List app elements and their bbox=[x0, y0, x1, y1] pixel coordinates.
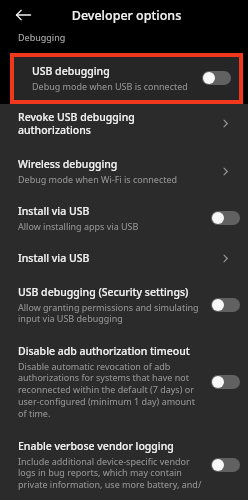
button[interactable]: Disable adb authorization timeout bbox=[211, 375, 240, 389]
button[interactable]: Revoke USB debugging authorizations bbox=[0, 104, 248, 149]
button[interactable]: Enable verbose vendor logging bbox=[0, 430, 248, 500]
staticText: Install via USB bbox=[18, 204, 90, 218]
staticText: Debug mode when USB is connected bbox=[32, 80, 188, 92]
button[interactable]: USB debugging bbox=[14, 57, 239, 99]
staticText: Debug mode when Wi-Fi is connected bbox=[18, 173, 178, 185]
button[interactable]: USB debugging (Security settings) bbox=[211, 298, 240, 312]
staticText: USB debugging bbox=[32, 64, 110, 78]
staticText: USB debugging (Security settings) bbox=[18, 285, 189, 299]
button[interactable]: Wireless debugging bbox=[0, 149, 248, 195]
staticText: Allow installing apps via USB bbox=[18, 220, 139, 232]
button[interactable]: Install via USB bbox=[0, 195, 248, 242]
button[interactable]: USB debugging (Security settings) bbox=[0, 276, 248, 335]
button[interactable]: Install via USB bbox=[0, 242, 248, 276]
staticText: Allow granting permissions and simulatin… bbox=[18, 301, 203, 325]
button[interactable]: USB debugging bbox=[202, 71, 231, 85]
button[interactable]: Back bbox=[11, 3, 35, 27]
staticText: Enable verbose vendor logging bbox=[18, 439, 174, 453]
staticText: Revoke USB debugging authorizations bbox=[18, 110, 203, 137]
staticText: Install via USB bbox=[18, 251, 90, 265]
staticText: Wireless debugging bbox=[18, 157, 118, 171]
staticText: Developer options bbox=[35, 7, 218, 24]
button[interactable]: Enable verbose vendor logging bbox=[211, 458, 240, 472]
staticText: Debugging bbox=[18, 31, 66, 43]
staticText: Disable adb authorization timeout bbox=[18, 344, 190, 358]
button[interactable]: Disable adb authorization timeout bbox=[0, 335, 248, 430]
button[interactable]: Install via USB bbox=[211, 211, 240, 225]
staticText: Include additional device-specific vendo… bbox=[18, 455, 203, 490]
staticText: Disable automatic revocation of adb auth… bbox=[18, 360, 203, 420]
